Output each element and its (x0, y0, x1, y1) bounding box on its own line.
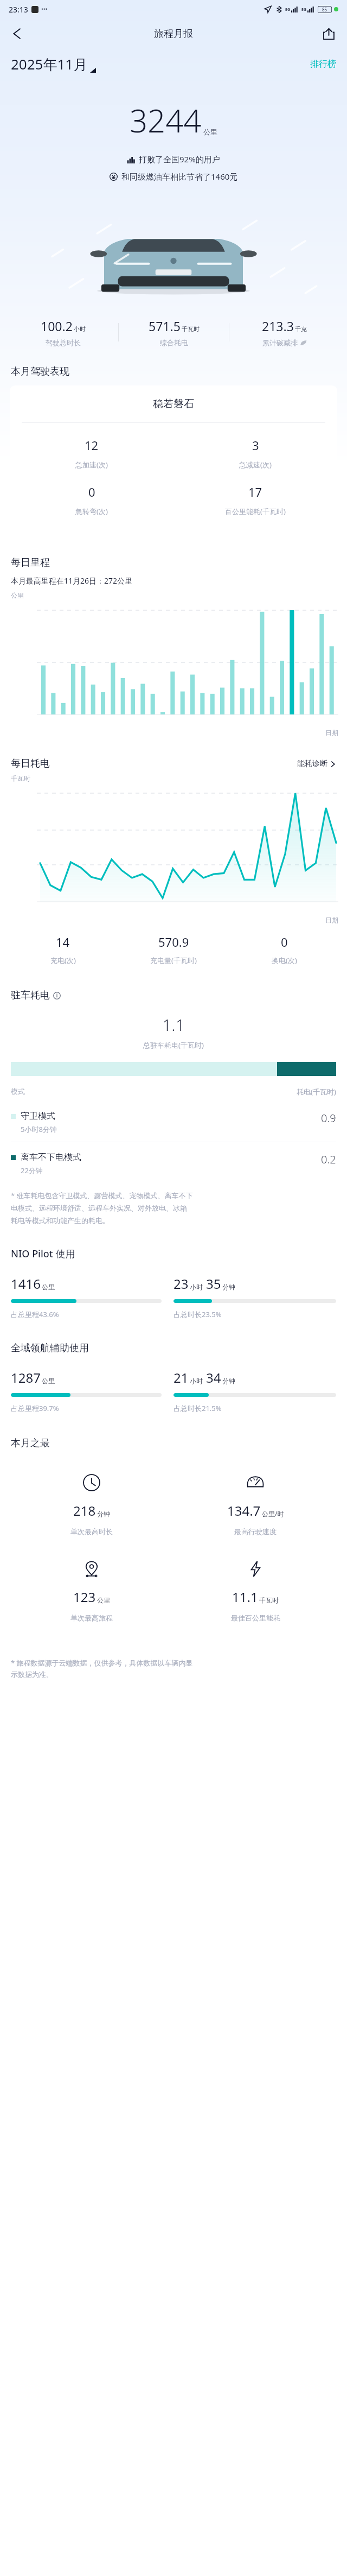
staticText: 本月之最 (11, 1437, 50, 1450)
staticText: 占总时长23.5% (173, 1309, 222, 1319)
staticText: 模式 (11, 1087, 25, 1096)
staticText: 1287 (11, 1369, 41, 1387)
staticText: 17 (248, 484, 262, 500)
staticText: 耗电(千瓦时) (297, 1087, 336, 1097)
staticText: 驾驶总时长 (46, 338, 81, 347)
staticText: 本月最高里程在11月26日：272公里 (11, 575, 133, 586)
staticText: 公里 (42, 1283, 55, 1291)
staticText: 公里 (203, 128, 217, 136)
staticText: ••• (41, 5, 48, 13)
staticText: 和同级燃油车相比节省了1460元 (121, 171, 238, 182)
staticText: 千瓦时 (182, 325, 200, 333)
staticText: 0 (88, 484, 95, 500)
button[interactable]: 守卫模式 (11, 1111, 336, 1134)
staticText: 排行榜 (310, 59, 336, 69)
staticText: 5G (285, 7, 291, 12)
staticText: 12 (85, 437, 99, 453)
staticText: 100.2 (41, 318, 73, 334)
button[interactable]: 返回 (5, 22, 29, 46)
other: 说明 (53, 992, 61, 999)
staticText: 213.3 (262, 318, 294, 334)
staticText: 换电(次) (272, 955, 297, 965)
staticText: 1.1 (0, 1014, 347, 1036)
staticText: 公里 (11, 591, 24, 599)
staticText: 充电量(千瓦时) (150, 955, 197, 965)
staticText: 2025年11月 (11, 54, 88, 74)
button[interactable]: 分享 (317, 22, 340, 46)
staticText: 离车不下电模式 (21, 1152, 81, 1163)
staticText: 小时 (190, 1377, 203, 1385)
staticText: 能耗诊断 (297, 759, 327, 769)
staticText: 123 (73, 1588, 96, 1606)
staticText: 占总里程43.6% (11, 1309, 59, 1319)
staticText: 稳若磐石 (10, 397, 337, 410)
staticText: 千瓦时 (11, 774, 30, 782)
staticText: 分钟 (222, 1283, 235, 1291)
staticText: 1416 (11, 1275, 41, 1293)
staticText: 34 (206, 1369, 221, 1387)
staticText: 百公里能耗(千瓦时) (225, 507, 286, 516)
staticText: 134.7 (227, 1502, 261, 1520)
staticText: * 旅程数据源于云端数据，仅供参考，具体数据以车辆内显 示数据为准。 (11, 1658, 193, 1679)
staticText: 最佳百公里能耗 (231, 1613, 280, 1622)
staticText: 单次最高旅程 (70, 1613, 113, 1622)
staticText: 分钟 (222, 1377, 235, 1385)
staticText: 0.2 (321, 1152, 336, 1167)
staticText: 小时 (74, 325, 86, 333)
staticText: 占总里程39.7% (11, 1403, 59, 1413)
staticText: 累计碳减排 (262, 338, 298, 347)
staticText: 驻车耗电 (11, 989, 50, 1002)
staticText: 公里 (97, 1596, 110, 1604)
staticText: 每日里程 (11, 556, 50, 569)
staticText: 急加速(次) (75, 460, 108, 470)
staticText: 小时 (190, 1283, 203, 1291)
staticText: 21 (173, 1369, 189, 1387)
staticText: * 驻车耗电包含守卫模式、露营模式、宠物模式、离车不下 电模式、远程环境舒适、远… (11, 1191, 193, 1225)
staticText: 3 (252, 437, 259, 453)
staticText: 571.5 (149, 318, 181, 334)
staticText: 5G (301, 7, 307, 12)
staticText: 35 (206, 1275, 221, 1293)
staticText: 旅程月报 (154, 28, 193, 40)
staticText: 最高行驶速度 (234, 1527, 277, 1536)
staticText: 每日耗电 (11, 757, 50, 770)
staticText: 守卫模式 (21, 1111, 55, 1122)
staticText: 全域领航辅助使用 (11, 1342, 89, 1355)
staticText: 85 (322, 7, 327, 12)
button[interactable]: 能耗诊断 (297, 759, 336, 769)
staticText: 打败了全国92%的用户 (139, 154, 220, 164)
staticText: 14 (56, 934, 70, 950)
staticText: 急转弯(次) (75, 507, 108, 516)
staticText: 218 (73, 1502, 96, 1520)
staticText: 23:13 (9, 4, 28, 15)
staticText: 0.9 (321, 1111, 336, 1125)
staticText: 11.1 (232, 1588, 258, 1606)
staticText: 公里/时 (262, 1509, 284, 1518)
staticText: 5小时8分钟 (21, 1124, 57, 1134)
button[interactable]: 2025年11月 (11, 54, 96, 74)
staticText: 日期 (325, 916, 338, 924)
button[interactable]: 排行榜 (310, 59, 336, 69)
staticText: 22分钟 (21, 1166, 43, 1175)
staticText: 本月驾驶表现 (11, 365, 69, 378)
staticText: 千克 (295, 325, 307, 333)
staticText: 0 (281, 934, 288, 950)
button[interactable]: 离车不下电模式 (11, 1152, 336, 1175)
staticText: 总驻车耗电(千瓦时) (0, 1040, 347, 1050)
staticText: 日期 (325, 729, 338, 737)
staticText: 占总时长21.5% (173, 1403, 222, 1413)
staticText: 千瓦时 (259, 1596, 279, 1604)
staticText: 充电(次) (50, 955, 76, 965)
staticText: 分钟 (97, 1510, 110, 1518)
staticText: 570.9 (158, 934, 189, 950)
staticText: NIO Pilot 使用 (11, 1247, 75, 1261)
staticText: 23 (173, 1275, 189, 1293)
staticText: 综合耗电 (160, 338, 188, 347)
staticText: 公里 (42, 1377, 55, 1385)
staticText: 单次最高时长 (70, 1527, 113, 1536)
staticText: 急减速(次) (239, 460, 272, 470)
staticText: 3244 (130, 99, 202, 142)
button[interactable]: 驻车耗电 (11, 989, 61, 1002)
